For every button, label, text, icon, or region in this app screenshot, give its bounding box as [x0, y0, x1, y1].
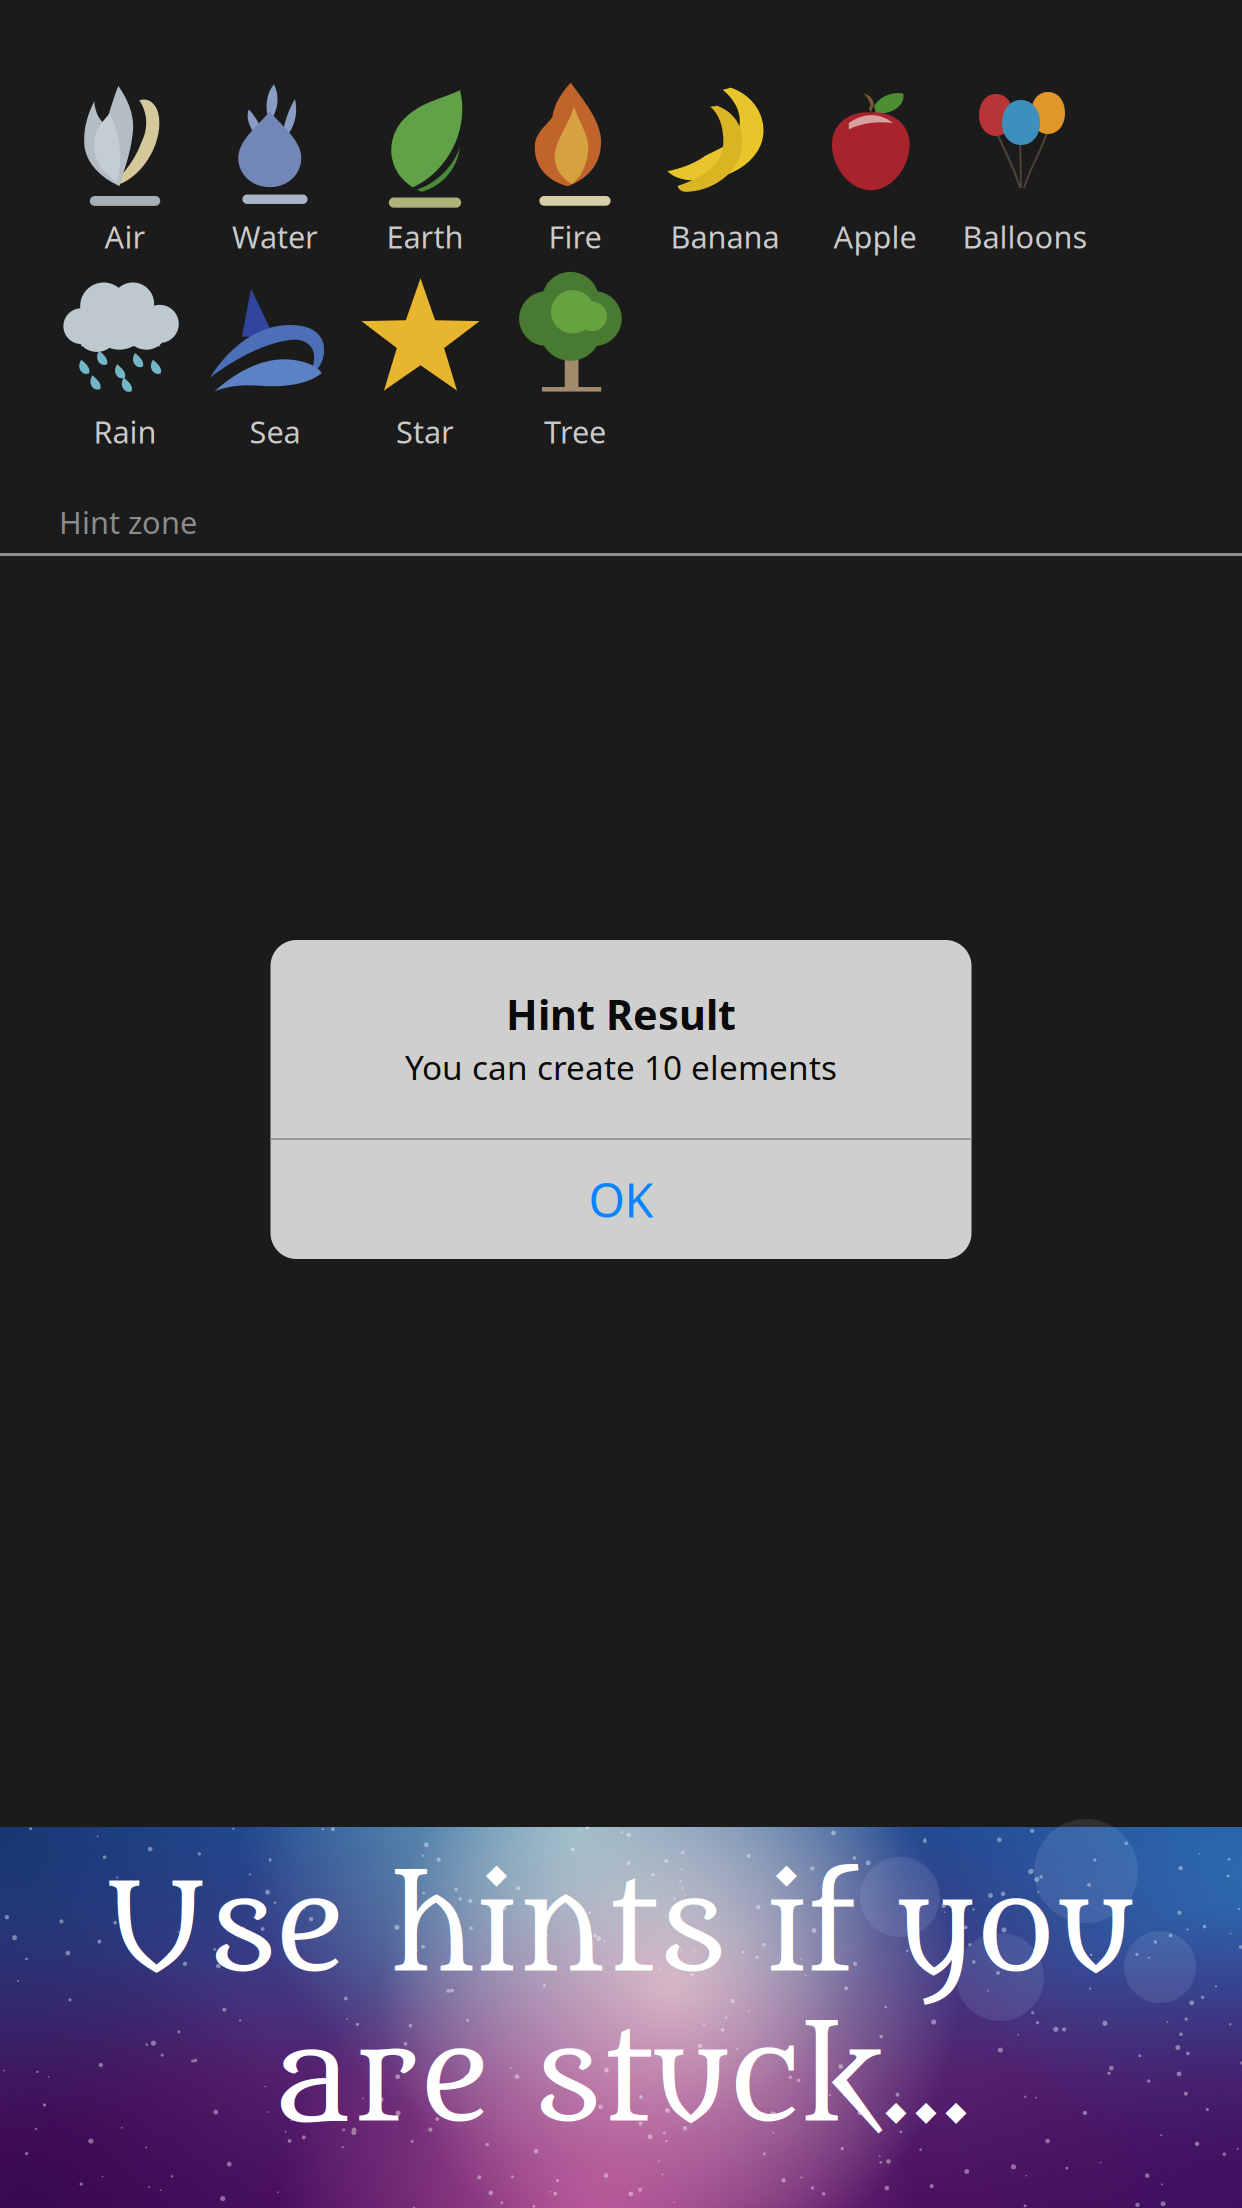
staticText: Hint Result	[506, 987, 736, 1041]
staticText: Balloons	[962, 216, 1087, 257]
button[interactable]: Banana	[650, 73, 800, 268]
button[interactable]: OK	[270, 1140, 971, 1259]
staticText: are stuck…	[271, 2005, 971, 2155]
button[interactable]: Star	[350, 268, 500, 463]
button[interactable]: Rain	[50, 268, 200, 463]
staticText: Sea	[249, 411, 300, 452]
staticText: Hint zone	[59, 502, 197, 542]
staticText: OK	[588, 1168, 653, 1230]
button[interactable]: Fire	[500, 73, 650, 268]
staticText: Use hints if you	[106, 1855, 1136, 2005]
staticText: Apple	[833, 216, 916, 257]
button[interactable]: Tree	[500, 268, 650, 463]
staticText: Rain	[93, 411, 156, 452]
button[interactable]: Water	[200, 73, 350, 268]
button[interactable]: Sea	[200, 268, 350, 463]
button[interactable]: Earth	[350, 73, 500, 268]
staticText: Air	[104, 216, 145, 257]
staticText: You can create 10 elements	[405, 1045, 837, 1089]
staticText: Fire	[548, 216, 601, 257]
staticText: Banana	[670, 216, 779, 257]
button[interactable]: Apple	[800, 73, 950, 268]
staticText: Water	[232, 216, 318, 257]
button[interactable]: Air	[50, 73, 200, 268]
staticText: Star	[396, 411, 454, 452]
button[interactable]: Balloons	[950, 73, 1100, 268]
staticText: Tree	[544, 411, 606, 452]
staticText: Earth	[386, 216, 463, 257]
